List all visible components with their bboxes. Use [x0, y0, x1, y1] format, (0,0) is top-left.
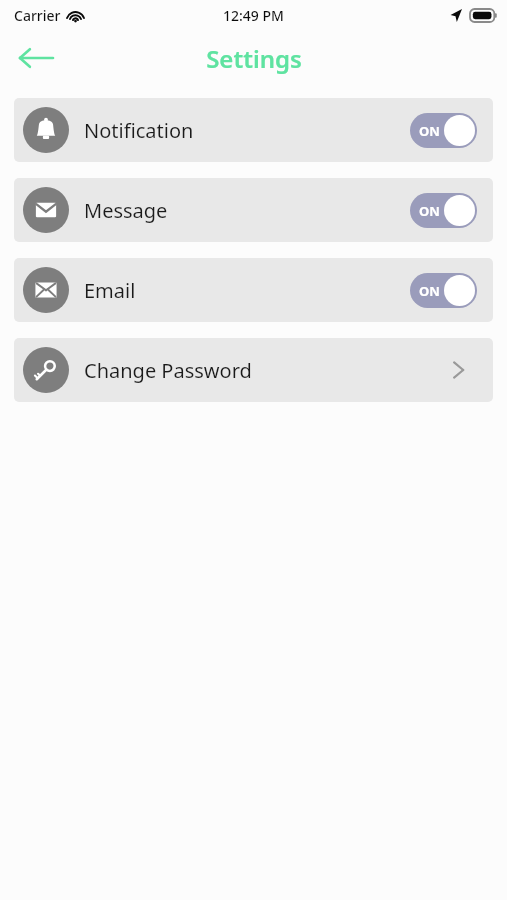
staticText: Message	[84, 197, 410, 224]
staticText: Settings	[206, 42, 302, 75]
button[interactable]: Notification	[14, 98, 493, 162]
button[interactable]: Change Password	[14, 338, 493, 402]
staticText: ON	[419, 282, 440, 300]
staticText: ON	[419, 122, 440, 140]
staticText: Carrier	[14, 6, 61, 25]
staticText: Notification	[84, 117, 410, 144]
button[interactable]: Message toggle, on	[410, 193, 477, 228]
button[interactable]: Back	[10, 36, 62, 80]
button[interactable]: Notification toggle, on	[410, 113, 477, 148]
staticText: Change Password	[84, 357, 447, 384]
button[interactable]: Email toggle, on	[410, 273, 477, 308]
button[interactable]: Message	[14, 178, 493, 242]
staticText: ON	[419, 202, 440, 220]
staticText: 12:49 PM	[223, 6, 284, 25]
button[interactable]: Email	[14, 258, 493, 322]
staticText: Email	[84, 277, 410, 304]
